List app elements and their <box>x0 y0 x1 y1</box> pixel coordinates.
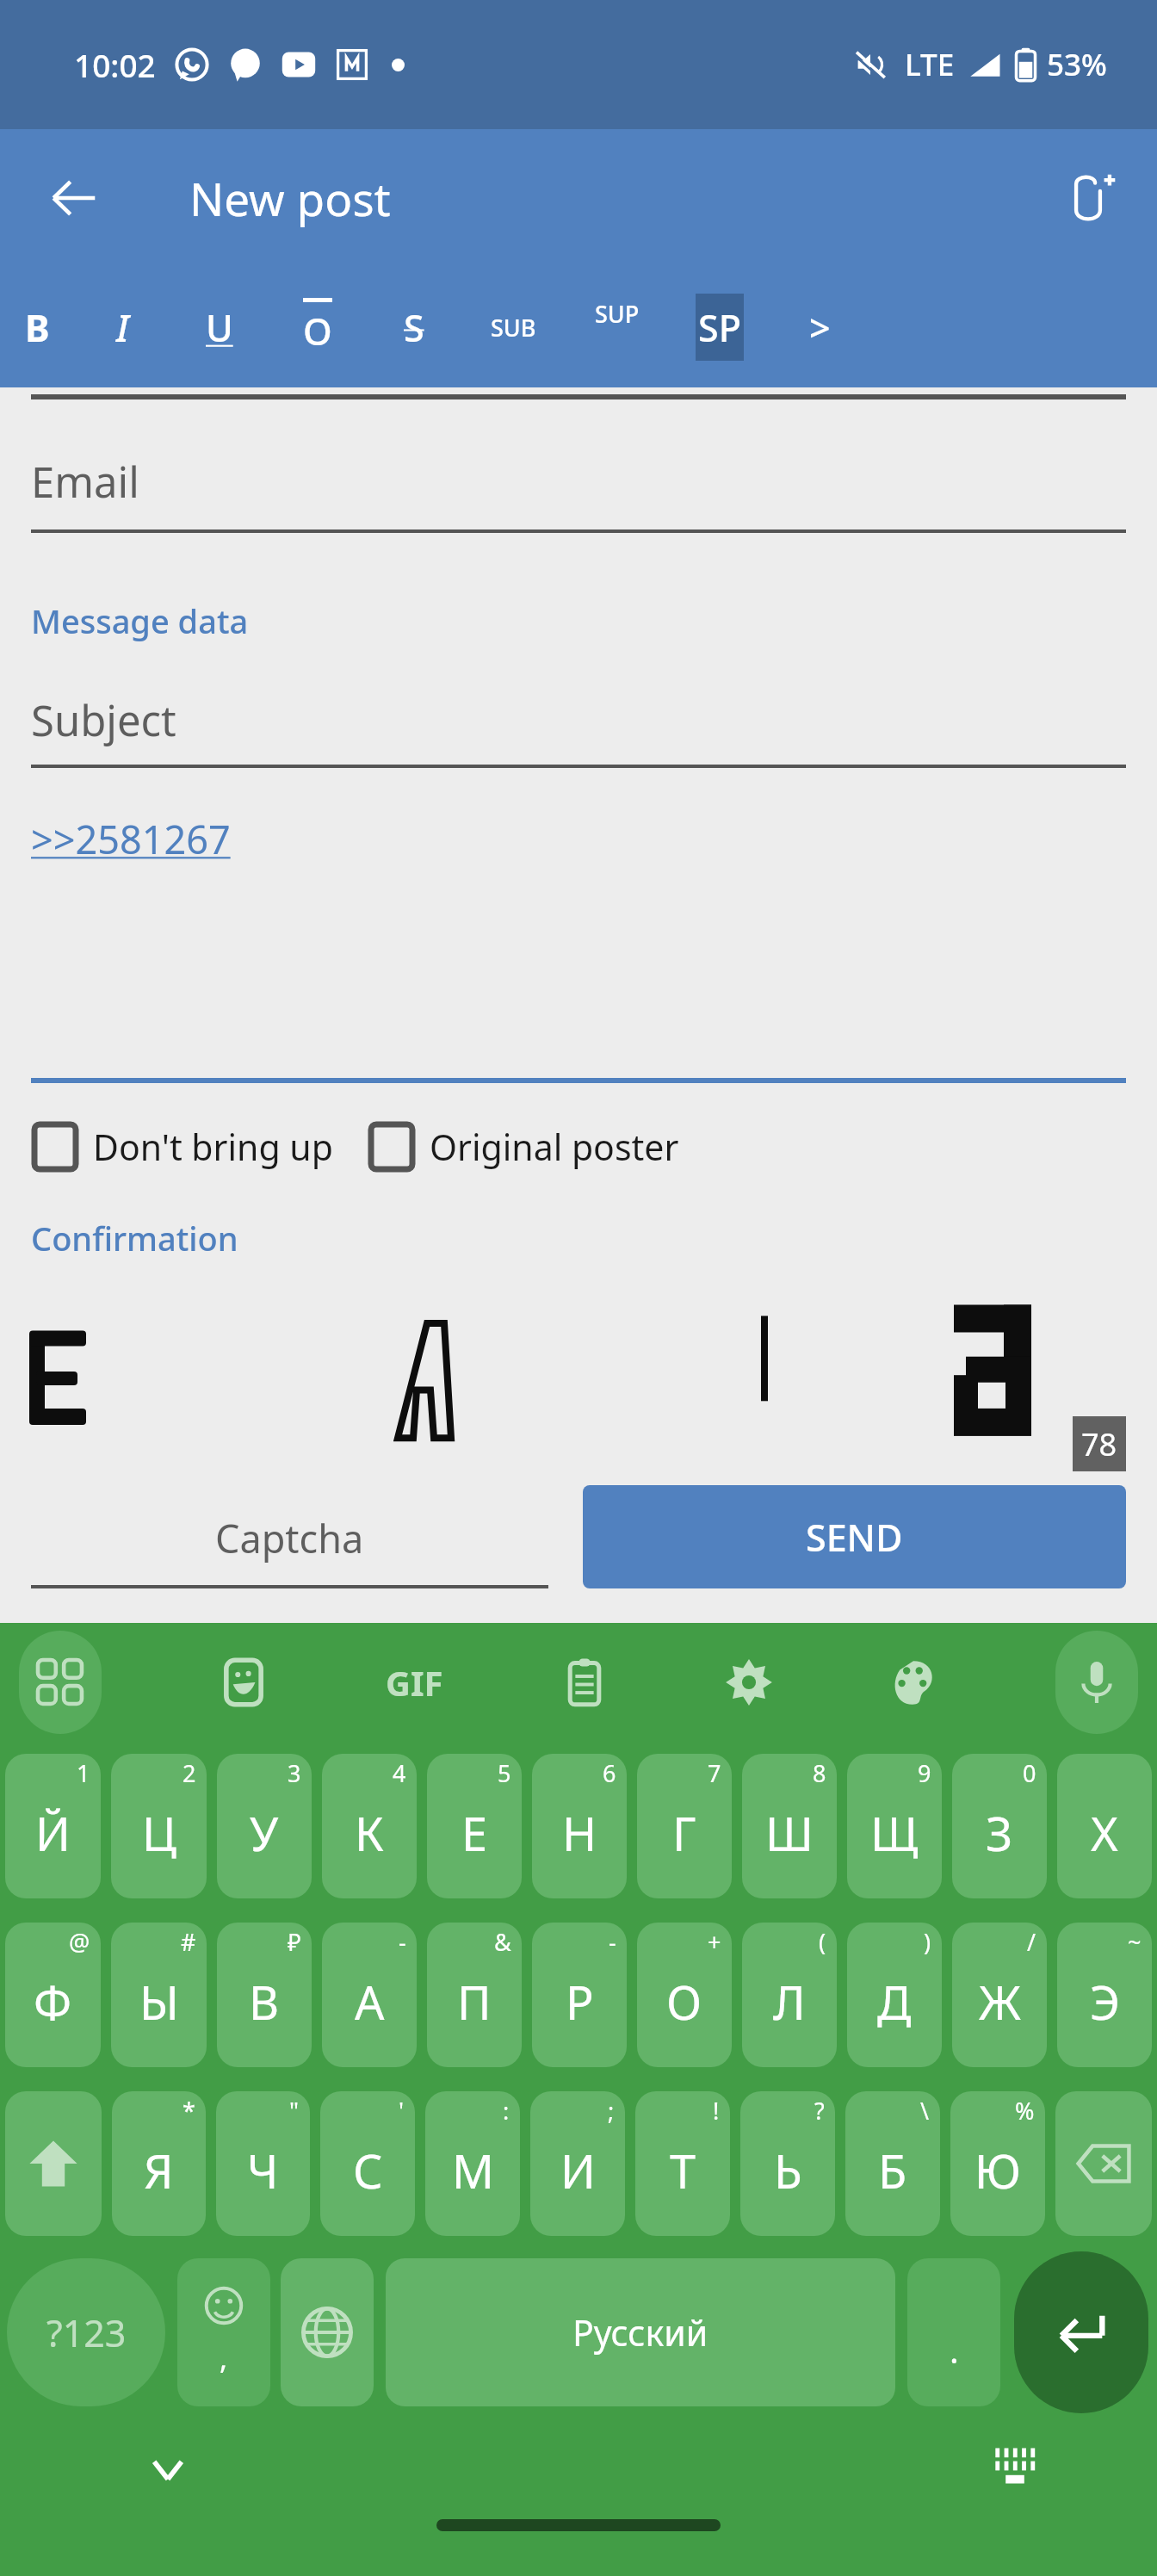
button[interactable]: Русский <box>386 2258 895 2406</box>
button[interactable]: ; <box>530 2091 625 2236</box>
staticText: Русский <box>572 2308 708 2356</box>
staticText: S <box>404 302 424 353</box>
button[interactable]: + <box>637 1923 732 2067</box>
button[interactable]: : <box>425 2091 520 2236</box>
button[interactable]: . <box>907 2258 1000 2406</box>
staticText: 0 <box>1023 1757 1036 1789</box>
staticText: Don't bring up <box>93 1123 333 1171</box>
staticText: Captcha <box>215 1512 364 1564</box>
button[interactable]: Backspace <box>1055 2091 1152 2236</box>
button[interactable]: Theme <box>872 1641 955 1724</box>
staticText: ? <box>814 2095 825 2127</box>
button[interactable]: ~ <box>1057 1923 1152 2067</box>
staticText: ?123 <box>46 2307 127 2358</box>
button[interactable]: O <box>269 267 367 387</box>
button[interactable]: Change language <box>281 2258 374 2406</box>
staticText: > <box>809 302 831 353</box>
button[interactable]: Clipboard <box>543 1641 626 1724</box>
button[interactable]: Keyboard switcher <box>985 2436 1045 2496</box>
button[interactable]: % <box>950 2091 1045 2236</box>
button[interactable]: ₽ <box>217 1923 312 2067</box>
staticText: " <box>289 2095 300 2127</box>
button[interactable]: / <box>952 1923 1047 2067</box>
button[interactable]: \ <box>845 2091 940 2236</box>
button[interactable]: - <box>322 1923 417 2067</box>
staticText: ( <box>819 1926 826 1958</box>
button[interactable]: > <box>770 267 869 387</box>
button[interactable]: # <box>111 1923 207 2067</box>
button[interactable]: >>2581267 <box>31 813 1126 1083</box>
button[interactable]: SUP <box>565 267 670 387</box>
button[interactable]: B <box>0 267 74 387</box>
staticText: Ш <box>765 1801 814 1865</box>
button[interactable]: Shift <box>5 2091 102 2236</box>
button[interactable]: Attach file <box>1045 155 1131 241</box>
button[interactable]: Enter <box>1014 2251 1148 2413</box>
button[interactable]: Settings <box>708 1641 790 1724</box>
button[interactable]: Emoji <box>177 2258 270 2406</box>
button[interactable]: Email <box>31 453 1126 533</box>
staticText: New post <box>189 167 391 229</box>
staticText: 5 <box>498 1757 511 1789</box>
button[interactable]: 2 <box>111 1754 207 1898</box>
button[interactable]: & <box>427 1923 522 2067</box>
button[interactable]: " <box>216 2091 310 2236</box>
staticText: Ы <box>139 1970 179 2034</box>
button[interactable]: 4 <box>322 1754 417 1898</box>
button[interactable]: ' <box>320 2091 415 2236</box>
staticText: U <box>206 302 233 353</box>
staticText: @ <box>69 1926 90 1958</box>
button[interactable]: 1 <box>5 1754 101 1898</box>
staticText: ; <box>608 2095 615 2127</box>
button[interactable]: Apps <box>19 1631 102 1734</box>
button[interactable]: Original poster <box>368 1123 679 1171</box>
button[interactable]: ?123 <box>7 2258 165 2406</box>
button[interactable]: Voice input <box>1055 1631 1138 1734</box>
staticText: Л <box>773 1970 806 2034</box>
button[interactable]: Don't bring up <box>31 1123 333 1171</box>
button[interactable]: 6 <box>532 1754 627 1898</box>
button[interactable]: ! <box>635 2091 730 2236</box>
button[interactable]: 7 <box>637 1754 732 1898</box>
button[interactable]: ( <box>742 1923 837 2067</box>
staticText: Subject <box>31 691 176 749</box>
button[interactable]: SEND <box>583 1485 1126 1588</box>
staticText: # <box>181 1926 196 1958</box>
button[interactable]: U <box>170 267 269 387</box>
staticText: 9 <box>918 1757 931 1789</box>
button[interactable]: 5 <box>427 1754 522 1898</box>
staticText: SUP <box>595 298 640 330</box>
button[interactable]: SP <box>670 267 770 387</box>
button[interactable]: Х <box>1057 1754 1152 1898</box>
button[interactable]: I <box>74 267 170 387</box>
button[interactable]: Back <box>31 155 117 241</box>
button[interactable]: GIF <box>367 1635 461 1730</box>
button[interactable]: S <box>367 267 461 387</box>
button[interactable]: - <box>532 1923 627 2067</box>
button[interactable]: Subject <box>31 691 1126 768</box>
button[interactable]: 9 <box>847 1754 942 1898</box>
staticText: Й <box>35 1801 71 1865</box>
button[interactable]: ? <box>740 2091 835 2236</box>
staticText: O <box>303 306 332 356</box>
button[interactable]: ) <box>847 1923 942 2067</box>
button[interactable]: @ <box>5 1923 101 2067</box>
staticText: \ <box>920 2095 930 2127</box>
button[interactable]: SUB <box>461 267 565 387</box>
staticText: SEND <box>806 1512 903 1563</box>
button[interactable]: 3 <box>217 1754 312 1898</box>
staticText: ! <box>713 2095 720 2127</box>
staticText: * <box>183 2095 195 2127</box>
staticText: Email <box>31 453 139 511</box>
button[interactable]: Captcha <box>31 1512 548 1588</box>
button[interactable]: 0 <box>952 1754 1047 1898</box>
button[interactable]: Stickers <box>202 1641 285 1724</box>
staticText: Х <box>1091 1801 1118 1865</box>
staticText: И <box>560 2139 596 2202</box>
staticText: Щ <box>870 1801 919 1865</box>
button[interactable]: 8 <box>742 1754 837 1898</box>
button[interactable]: * <box>112 2091 206 2236</box>
button[interactable]: Hide keyboard <box>138 2439 198 2499</box>
staticText: А <box>355 1970 385 2034</box>
staticText: С <box>353 2139 383 2202</box>
